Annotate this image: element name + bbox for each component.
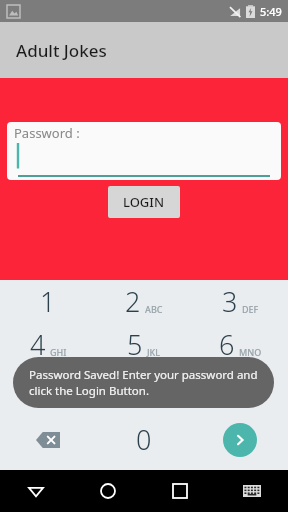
- staticText: LOGIN: [123, 193, 165, 211]
- button[interactable]: Next: [223, 423, 257, 457]
- button[interactable]: 0: [96, 409, 192, 470]
- button[interactable]: 1: [0, 280, 96, 323]
- staticText: 1: [40, 283, 56, 320]
- staticText: Password Saved! Enter your password and …: [29, 367, 260, 398]
- staticText: GHI: [50, 346, 67, 358]
- button[interactable]: Home: [72, 470, 144, 512]
- button[interactable]: 6: [192, 323, 288, 366]
- staticText: 9: [218, 369, 234, 406]
- button[interactable]: 2: [96, 280, 192, 323]
- button[interactable]: 4: [0, 323, 96, 366]
- button[interactable]: 7: [0, 366, 96, 409]
- staticText: ABC: [145, 303, 163, 315]
- staticText: PQRS: [46, 389, 70, 401]
- staticText: MNO: [239, 346, 262, 358]
- staticText: 4: [30, 326, 46, 363]
- staticText: 2: [125, 283, 141, 320]
- button[interactable]: LOGIN: [108, 186, 180, 218]
- staticText: 7: [26, 369, 42, 406]
- button[interactable]: 9: [192, 366, 288, 409]
- button[interactable]: Backspace: [0, 409, 96, 470]
- staticText: Adult Jokes: [16, 39, 107, 62]
- button[interactable]: 8: [96, 366, 192, 409]
- staticText: 3: [222, 283, 238, 320]
- button[interactable]: 3: [192, 280, 288, 323]
- staticText: Password :: [14, 124, 80, 142]
- staticText: JKL: [147, 346, 161, 358]
- staticText: 0: [136, 421, 152, 458]
- button[interactable]: Back: [0, 470, 72, 512]
- button[interactable]: Password :: [7, 122, 281, 180]
- staticText: TUV: [145, 389, 163, 401]
- button[interactable]: Keyboard: [216, 470, 288, 512]
- staticText: 5: [127, 326, 143, 363]
- staticText: DEF: [242, 303, 259, 315]
- button[interactable]: 5: [96, 323, 192, 366]
- staticText: 5:49: [260, 4, 282, 19]
- button[interactable]: Recents: [144, 470, 216, 512]
- staticText: 6: [219, 326, 235, 363]
- staticText: 8: [125, 369, 141, 406]
